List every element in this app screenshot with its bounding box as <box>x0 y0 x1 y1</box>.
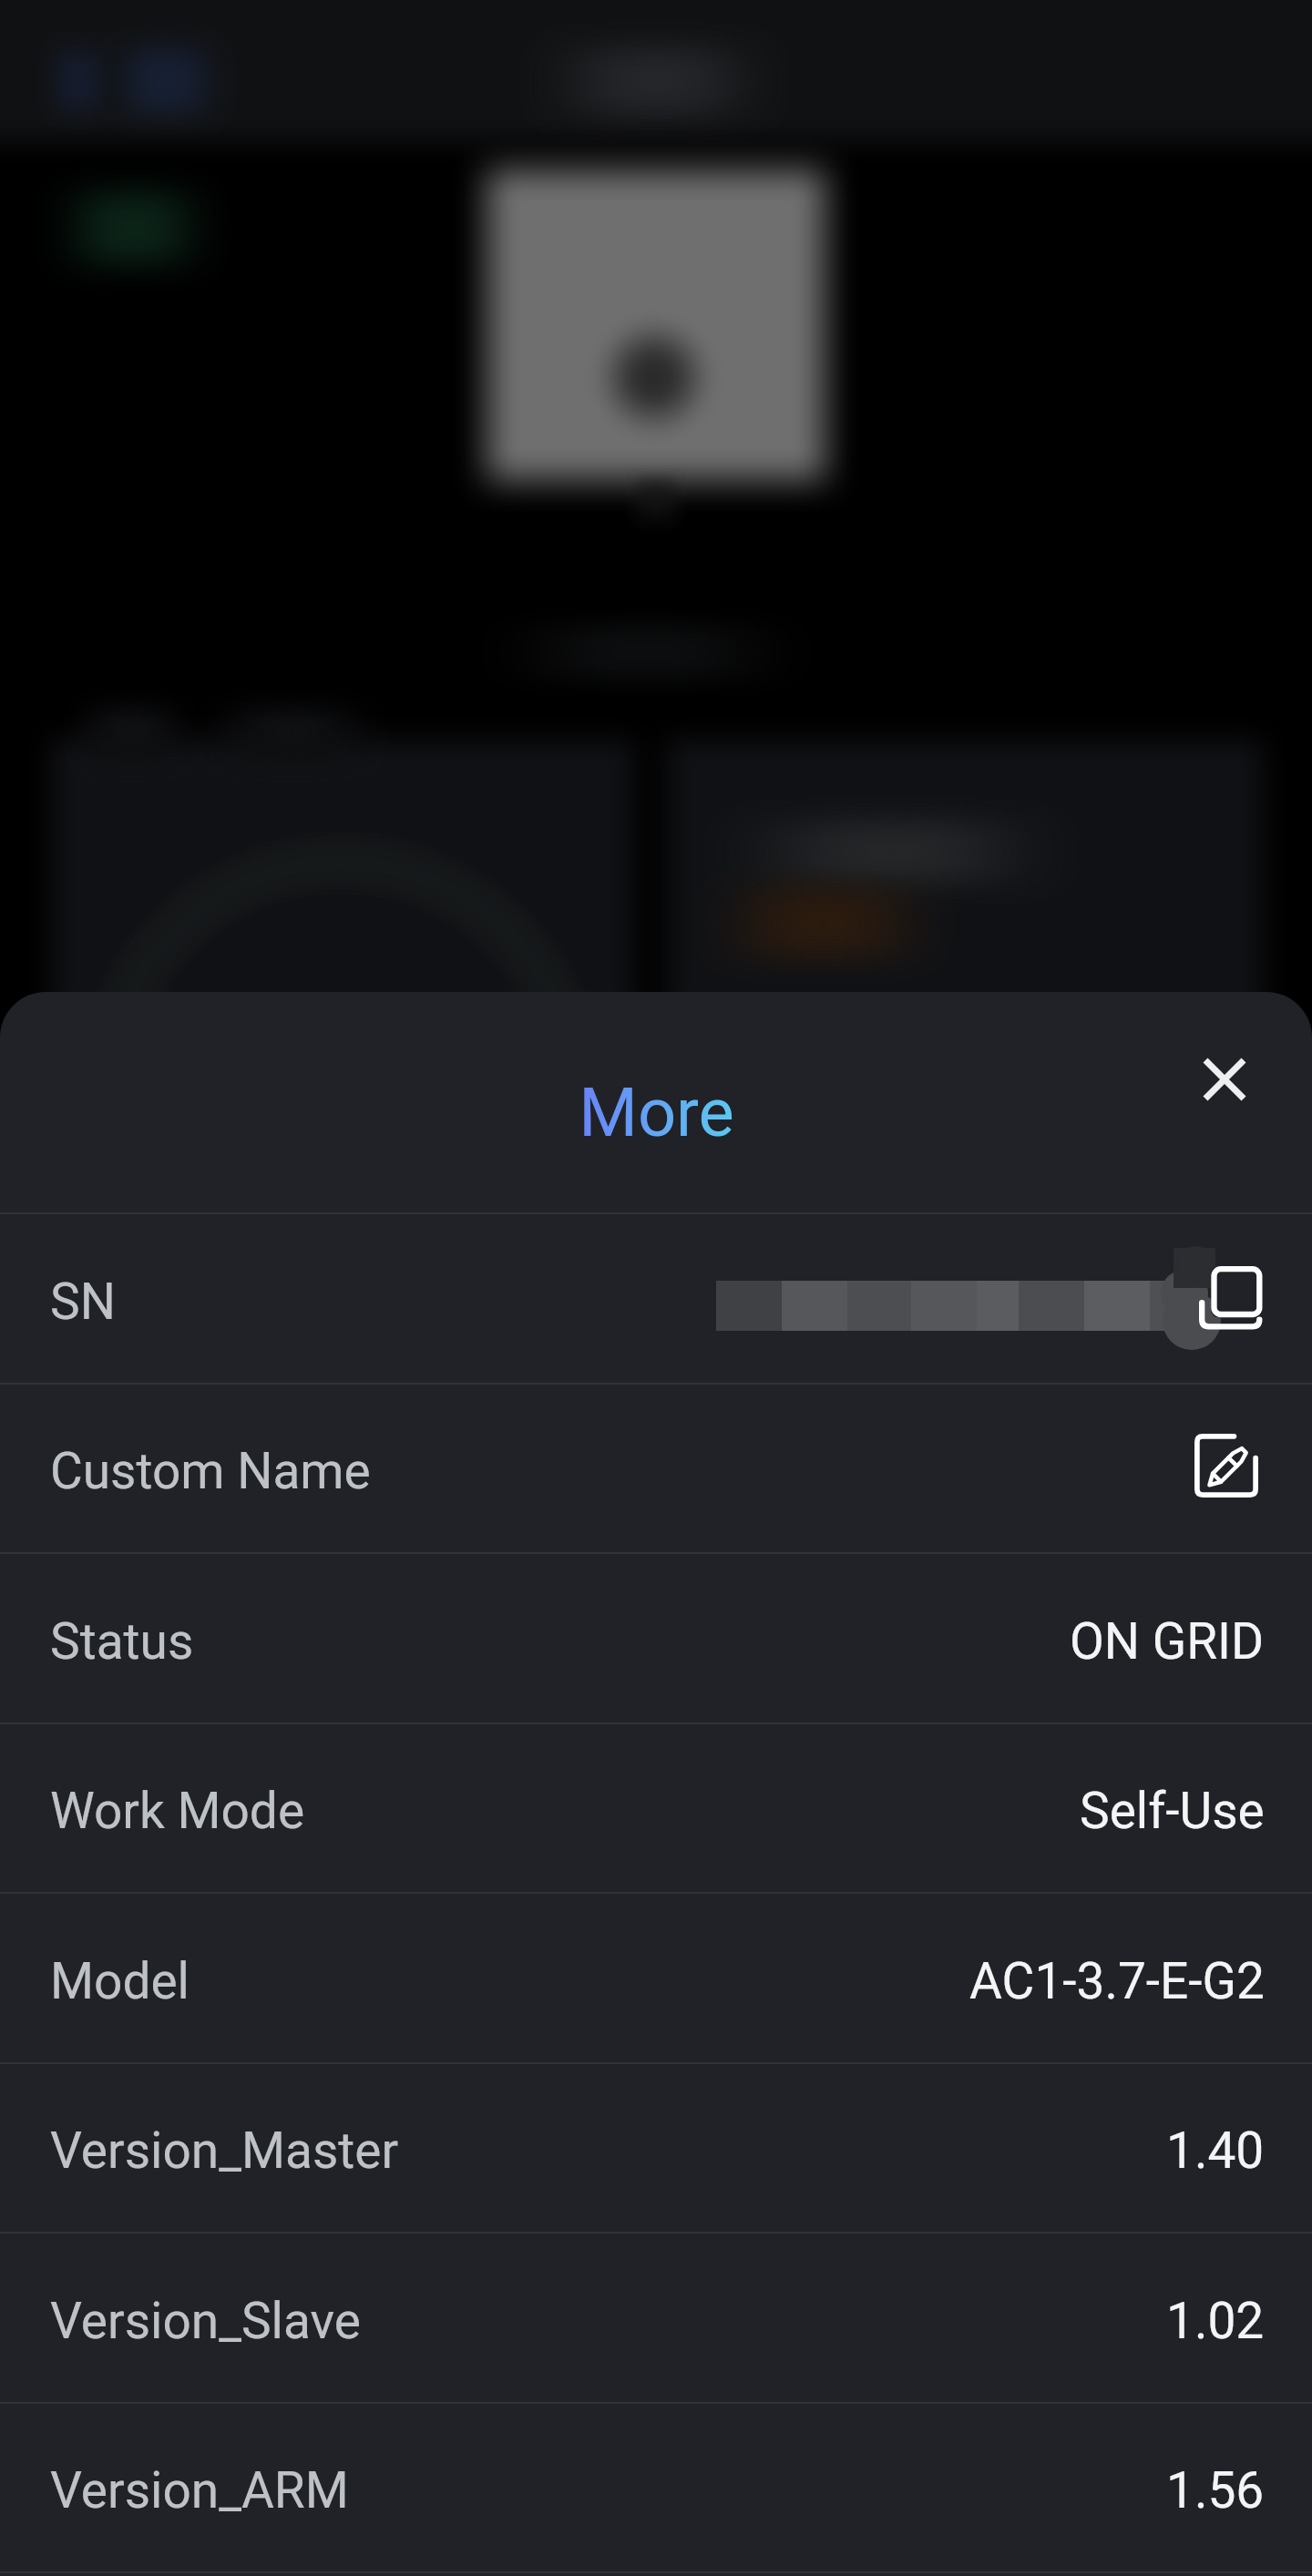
staticText: Version_ARM <box>50 2461 349 2520</box>
button[interactable]: Copy serial number <box>0 1214 1312 1383</box>
button[interactable]: Status <box>0 1554 1312 1722</box>
staticText: Model <box>50 1952 190 2010</box>
staticText: Custom Name <box>50 1442 371 1500</box>
staticText: Work Mode <box>50 1782 305 1840</box>
staticText: Version_Master <box>50 2121 399 2180</box>
button[interactable]: Version_Slave <box>0 2234 1312 2402</box>
staticText: Self-Use <box>1080 1782 1265 1840</box>
staticText: AC1-3.7-E-G2 <box>969 1952 1265 2010</box>
staticText: SN <box>50 1273 116 1331</box>
staticText: More <box>579 1073 734 1152</box>
button[interactable]: Close <box>1155 1010 1294 1149</box>
staticText: 1.02 <box>1166 2292 1265 2350</box>
staticText: 1.40 <box>1166 2121 1265 2180</box>
staticText: 1.56 <box>1166 2461 1265 2520</box>
staticText: Version_Slave <box>50 2292 361 2350</box>
button[interactable]: Model <box>0 1894 1312 2062</box>
button[interactable]: Edit custom name <box>0 1385 1312 1552</box>
staticText: ON GRID <box>1070 1612 1265 1671</box>
staticText: Status <box>50 1612 194 1671</box>
button[interactable]: Version_Master <box>0 2064 1312 2232</box>
button[interactable]: Version_ARM <box>0 2404 1312 2571</box>
button[interactable]: Work Mode <box>0 1724 1312 1892</box>
